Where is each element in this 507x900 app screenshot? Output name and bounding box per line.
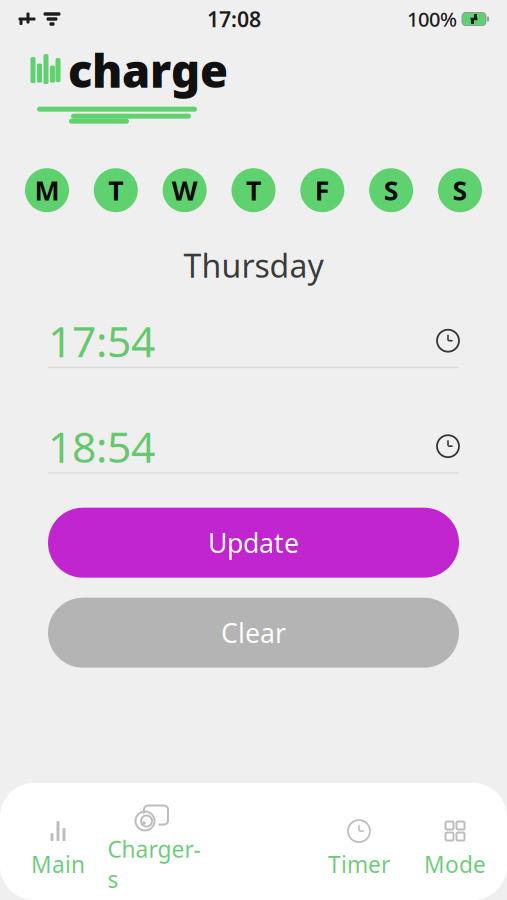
staticText: Thursday: [183, 244, 323, 287]
staticText: 100%: [407, 6, 457, 32]
button[interactable]: Chargers: [106, 805, 202, 894]
staticText: W: [172, 172, 198, 208]
staticText: 17:08: [207, 5, 261, 33]
button[interactable]: 17:54: [0, 315, 507, 368]
staticText: Main: [31, 849, 85, 879]
button[interactable]: W: [163, 168, 207, 212]
staticText: T: [108, 172, 123, 208]
staticText: S: [452, 172, 467, 208]
staticText: Timer: [328, 849, 390, 879]
staticText: Mode: [424, 849, 486, 879]
staticText: charge: [68, 40, 228, 100]
button[interactable]: 18:54: [0, 420, 507, 474]
button[interactable]: T: [94, 168, 138, 212]
button[interactable]: Update: [48, 508, 459, 578]
button[interactable]: T: [231, 168, 275, 212]
button[interactable]: Main: [10, 820, 106, 879]
button[interactable]: M: [25, 168, 69, 212]
staticText: 18:54: [48, 418, 155, 475]
staticText: T: [246, 172, 261, 208]
button[interactable]: S: [438, 168, 482, 212]
button[interactable]: F: [300, 168, 344, 212]
staticText: 17:54: [48, 312, 155, 369]
staticText: S: [384, 172, 399, 208]
staticText: Clear: [221, 615, 286, 650]
button[interactable]: Clear: [48, 598, 459, 668]
staticText: M: [34, 172, 59, 208]
staticText: Update: [208, 525, 299, 560]
staticText: Chargers: [107, 834, 200, 894]
staticText: F: [315, 172, 330, 208]
button[interactable]: Timer: [311, 820, 407, 879]
button[interactable]: S: [369, 168, 413, 212]
button[interactable]: Mode: [407, 820, 503, 879]
